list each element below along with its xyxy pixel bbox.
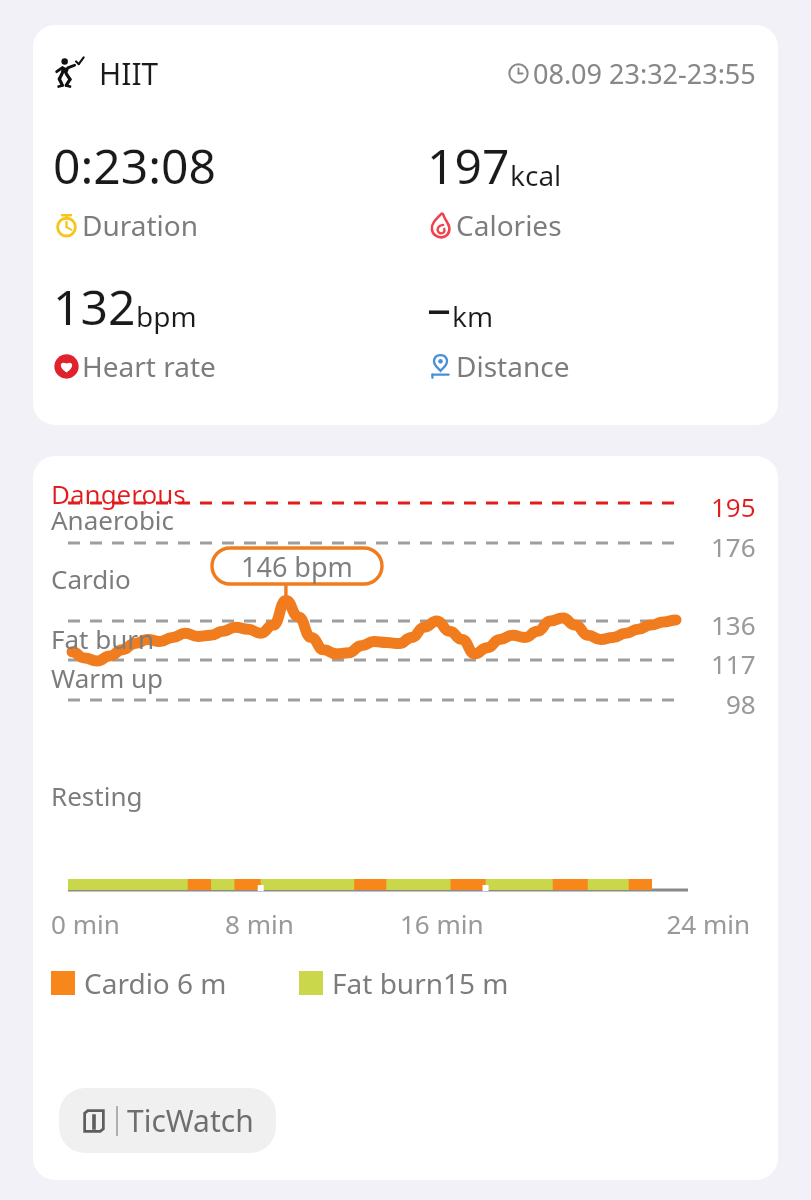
- button[interactable]: 197: [427, 133, 778, 244]
- staticText: 98: [726, 686, 756, 721]
- button[interactable]: HIIT: [33, 25, 778, 425]
- staticText: kcal: [510, 156, 562, 194]
- staticText: Warm up: [51, 660, 164, 695]
- staticText: Fat burn: [51, 621, 155, 656]
- staticText: Resting: [51, 778, 143, 813]
- button[interactable]: TicWatch: [59, 1088, 276, 1153]
- button[interactable]: 132: [53, 274, 405, 385]
- staticText: 197: [427, 133, 510, 198]
- staticText: TicWatch: [127, 1100, 254, 1141]
- staticText: Fat burn15 m: [332, 964, 509, 1002]
- button[interactable]: –: [427, 274, 778, 385]
- staticText: 24 min: [575, 906, 750, 941]
- staticText: 16 min: [400, 906, 575, 941]
- staticText: 08.09 23:32-23:55: [533, 55, 756, 92]
- staticText: Distance: [456, 347, 570, 385]
- staticText: HIIT: [99, 53, 159, 94]
- staticText: 176: [711, 529, 756, 564]
- staticText: Anaerobic: [51, 502, 175, 537]
- button[interactable]: Fat burn15 m: [299, 964, 509, 1002]
- button[interactable]: Cardio 6 m: [51, 964, 227, 1002]
- staticText: 0 min: [51, 906, 225, 941]
- staticText: 132: [53, 274, 136, 339]
- staticText: 146 bpm: [241, 548, 353, 584]
- staticText: 136: [711, 607, 756, 642]
- staticText: 117: [711, 646, 756, 681]
- staticText: Cardio: [51, 561, 131, 596]
- button[interactable]: Dangerous: [33, 456, 778, 1180]
- staticText: Cardio 6 m: [84, 964, 227, 1002]
- staticText: bpm: [136, 297, 197, 335]
- staticText: Heart rate: [82, 347, 216, 385]
- staticText: Duration: [82, 206, 199, 244]
- staticText: 195: [711, 489, 756, 524]
- staticText: –: [427, 274, 452, 339]
- staticText: km: [452, 297, 494, 335]
- staticText: 8 min: [225, 906, 400, 941]
- staticText: Calories: [456, 206, 562, 244]
- staticText: 0:23:08: [53, 133, 217, 198]
- button[interactable]: 0:23:08: [53, 133, 405, 244]
- staticText: Dangerous: [51, 476, 186, 511]
